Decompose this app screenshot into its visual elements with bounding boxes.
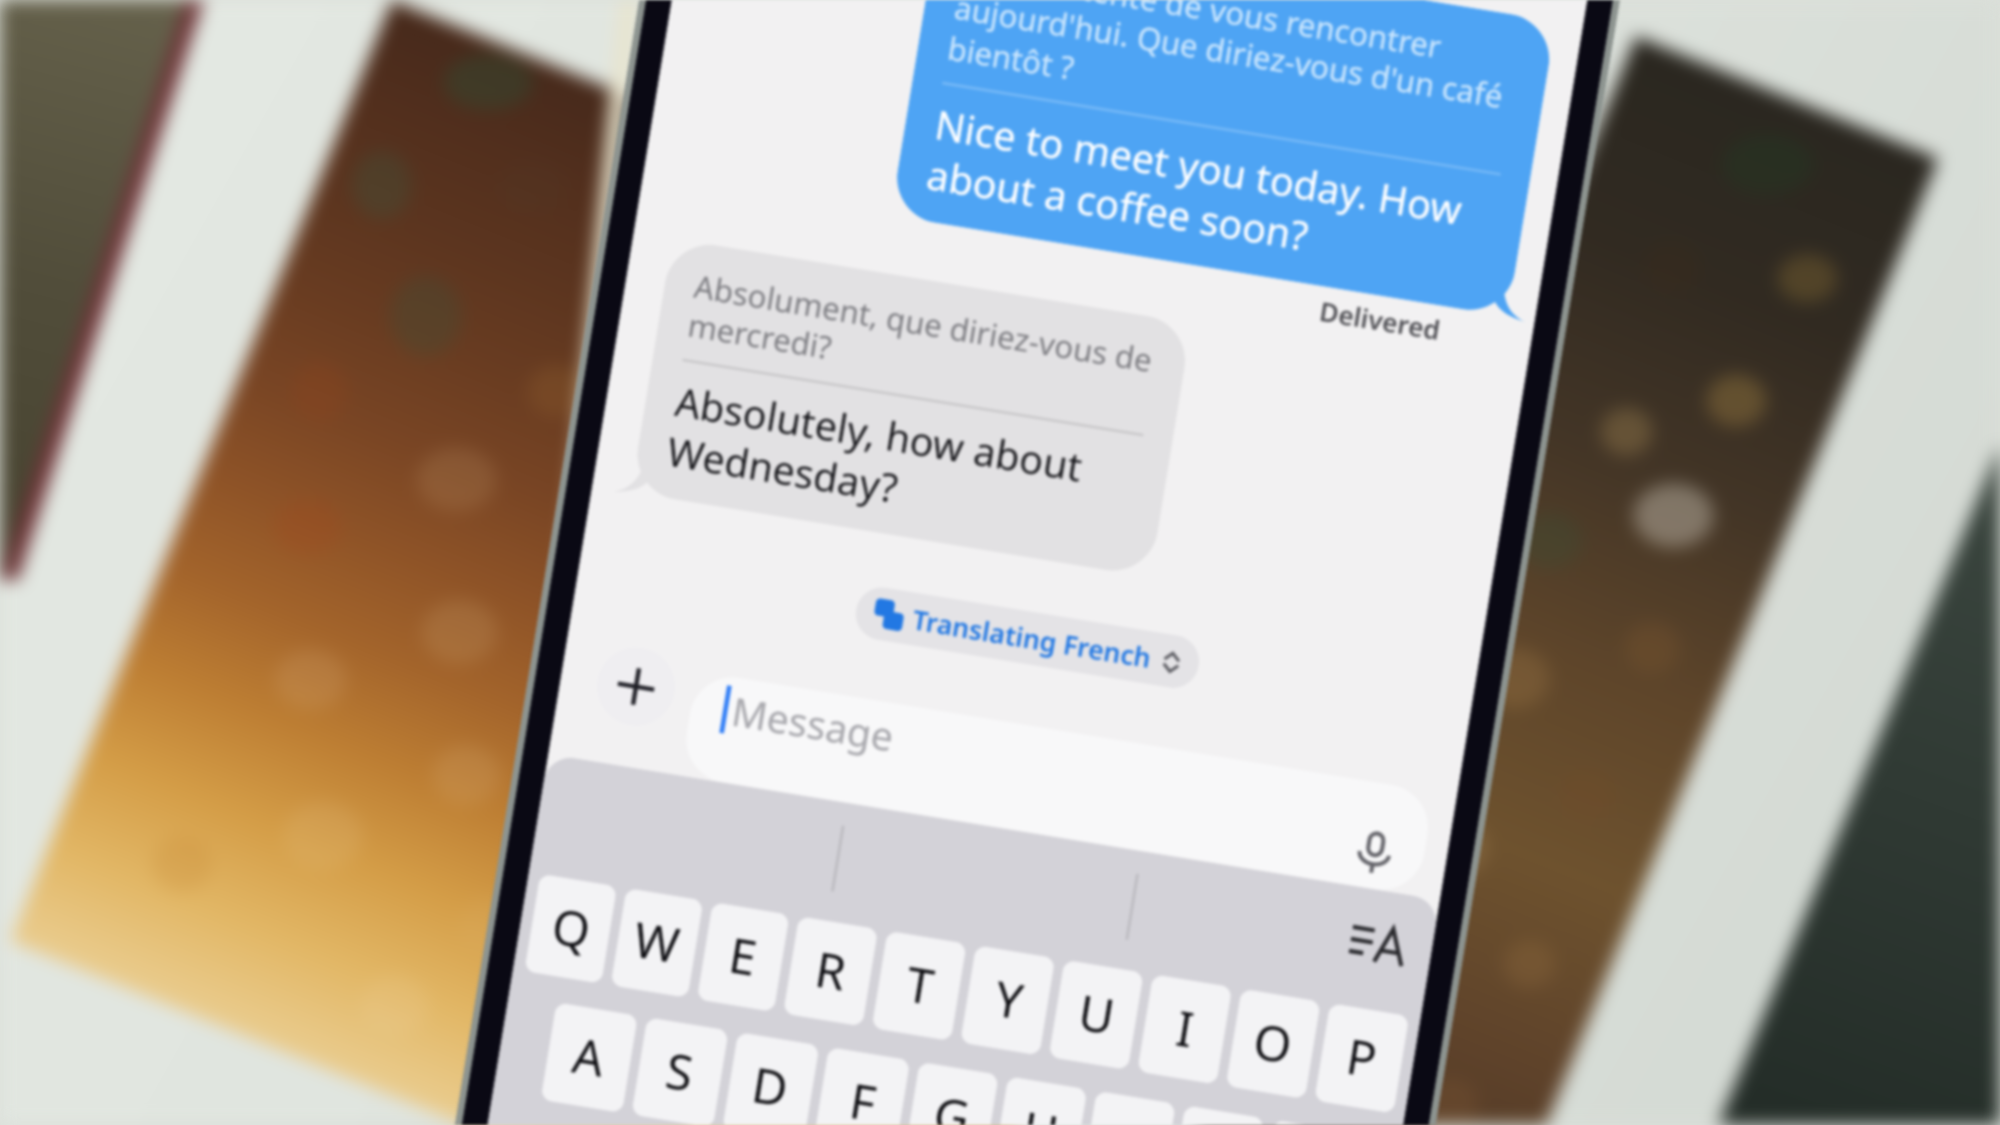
button[interactable]: I bbox=[1137, 974, 1232, 1085]
button[interactable]: O bbox=[1225, 988, 1321, 1099]
staticText: T bbox=[901, 951, 939, 1021]
button[interactable]: T bbox=[871, 930, 967, 1041]
button[interactable]: Très contente de vous rencontrer aujourd… bbox=[890, 0, 1556, 317]
button[interactable]: H bbox=[992, 1076, 1087, 1125]
button[interactable]: S bbox=[631, 1017, 729, 1125]
staticText: Q bbox=[547, 893, 597, 965]
staticText: Message bbox=[728, 684, 898, 763]
button[interactable]: Message bbox=[680, 671, 1435, 896]
button[interactable]: F bbox=[813, 1047, 910, 1125]
button[interactable]: E bbox=[697, 902, 790, 1012]
button[interactable]: P bbox=[1314, 1003, 1409, 1114]
button[interactable]: J bbox=[1081, 1091, 1176, 1125]
staticText: E bbox=[724, 922, 762, 992]
staticText: Absolutely, how about Wednesday? bbox=[663, 374, 1141, 552]
button[interactable]: Absolument, que diriez-vous de mercredi? bbox=[631, 238, 1192, 577]
staticText: G bbox=[929, 1081, 976, 1125]
staticText: Très contente de vous rencontrer aujourd… bbox=[945, 0, 1523, 160]
button[interactable]: L bbox=[1258, 1120, 1353, 1125]
button[interactable]: U bbox=[1048, 959, 1144, 1070]
button[interactable]: Y bbox=[960, 945, 1055, 1056]
staticText: Delivered bbox=[1317, 293, 1443, 349]
staticText: A bbox=[568, 1022, 611, 1093]
staticText: F bbox=[845, 1067, 881, 1125]
staticText: P bbox=[1342, 1023, 1382, 1094]
button[interactable]: K bbox=[1169, 1105, 1264, 1125]
button[interactable]: A bbox=[540, 1002, 638, 1113]
button[interactable]: Text formatting bbox=[1345, 911, 1409, 975]
staticText: D bbox=[747, 1051, 794, 1123]
staticText: I bbox=[1171, 995, 1200, 1064]
staticText: Y bbox=[990, 965, 1028, 1036]
staticText: W bbox=[629, 906, 685, 980]
staticText: S bbox=[661, 1037, 699, 1108]
button[interactable]: W bbox=[610, 888, 704, 998]
staticText: Translating French bbox=[910, 602, 1154, 677]
staticText: Nice to meet you today. How about a coff… bbox=[923, 98, 1498, 291]
button[interactable]: Dictate bbox=[1349, 828, 1399, 878]
button[interactable]: Q bbox=[524, 874, 617, 984]
staticText: R bbox=[810, 936, 853, 1007]
button[interactable]: Translating French bbox=[852, 583, 1203, 692]
button[interactable]: G bbox=[904, 1062, 999, 1125]
button[interactable]: D bbox=[722, 1032, 820, 1125]
staticText: H bbox=[1017, 1096, 1064, 1125]
staticText: O bbox=[1248, 1008, 1298, 1080]
staticText: U bbox=[1074, 979, 1121, 1051]
button[interactable]: R bbox=[783, 916, 878, 1027]
staticText: Absolument, que diriez-vous de mercredi? bbox=[685, 263, 1159, 420]
button[interactable]: Add attachment bbox=[591, 642, 681, 731]
